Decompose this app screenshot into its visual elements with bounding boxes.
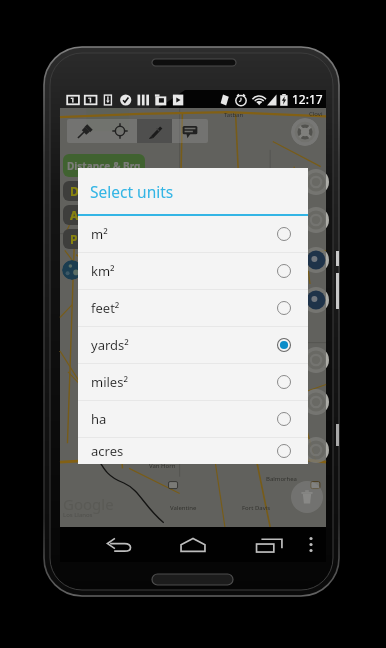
button[interactable]: Delete bbox=[291, 481, 323, 513]
staticText: 12:17 bbox=[292, 91, 323, 107]
staticText: miles² bbox=[91, 373, 128, 391]
staticText: acres bbox=[91, 442, 124, 460]
staticText: km² bbox=[91, 262, 115, 280]
button[interactable]: Satellite view bbox=[62, 260, 82, 280]
button[interactable]: km² bbox=[78, 253, 308, 289]
button[interactable]: m² bbox=[78, 216, 308, 252]
staticText: Select units bbox=[90, 181, 174, 202]
button[interactable]: Compass bbox=[291, 118, 319, 146]
button[interactable]: Notes bbox=[172, 119, 207, 143]
button[interactable]: ha bbox=[78, 401, 308, 437]
button[interactable]: feet² bbox=[78, 290, 308, 326]
staticText: D bbox=[70, 183, 79, 199]
staticText: Distance & Brg bbox=[67, 159, 141, 173]
button[interactable]: miles² bbox=[78, 364, 308, 400]
button[interactable]: A bbox=[63, 205, 85, 225]
button[interactable]: Draw bbox=[137, 119, 172, 143]
button[interactable]: acres bbox=[78, 438, 308, 464]
button[interactable]: My location bbox=[102, 119, 137, 143]
button[interactable]: Add marker bbox=[67, 119, 102, 143]
button[interactable]: Home bbox=[171, 527, 215, 562]
staticText: Tatban bbox=[224, 111, 244, 119]
staticText: ha bbox=[91, 410, 107, 428]
button[interactable]: More options bbox=[301, 527, 321, 562]
staticText: feet² bbox=[91, 299, 120, 317]
staticText: A bbox=[70, 207, 79, 223]
staticText: m² bbox=[91, 225, 108, 243]
staticText: yards² bbox=[91, 336, 129, 354]
staticText: Valentine bbox=[170, 504, 197, 512]
staticText: Balmorhea bbox=[266, 475, 297, 483]
button[interactable]: D bbox=[63, 181, 85, 201]
button[interactable]: Recent apps bbox=[249, 527, 289, 562]
staticText: Fort Davis bbox=[242, 504, 271, 512]
staticText: Van Horn bbox=[149, 462, 176, 470]
staticText: Clovi bbox=[309, 110, 323, 118]
button[interactable]: Back bbox=[97, 527, 141, 562]
button[interactable]: Distance & Brg bbox=[63, 154, 145, 177]
staticText: P bbox=[70, 231, 78, 247]
staticText: Los Llanos bbox=[63, 511, 93, 519]
button[interactable]: yards² bbox=[78, 327, 308, 363]
button[interactable]: P bbox=[63, 229, 85, 249]
